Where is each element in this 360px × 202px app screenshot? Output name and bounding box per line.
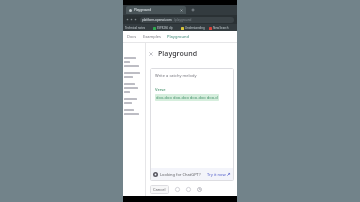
staticText: Technical notes (125, 26, 151, 30)
button[interactable]: Copy (174, 186, 181, 193)
button[interactable]: Playground (126, 6, 186, 14)
button[interactable]: Cancel (150, 185, 169, 194)
button[interactable]: Understanding (181, 26, 207, 30)
staticText: Playground (158, 49, 198, 59)
button[interactable]: ESP8266 diy (153, 26, 179, 30)
staticText: Looking for ChatGPT? (160, 172, 206, 177)
button[interactable]: Try it now (206, 171, 231, 178)
staticText: ESP8266 diy (157, 26, 179, 30)
button[interactable]: Technical notes (125, 26, 151, 30)
staticText: Cancel (153, 187, 166, 192)
button[interactable]: Save (185, 186, 192, 193)
staticText: platform.openai.com (142, 18, 172, 22)
button[interactable]: Navigate (130, 18, 133, 21)
staticText: Examples (143, 34, 161, 39)
button[interactable]: Navigate (126, 18, 129, 21)
button[interactable]: Navigate (134, 18, 137, 21)
button[interactable]: History (196, 186, 203, 193)
button[interactable]: New Search (209, 26, 235, 30)
staticText: doo-doo doo-doo doo-doo doo-d (156, 95, 218, 100)
staticText: Playground (134, 8, 180, 12)
button[interactable]: Playground (164, 32, 192, 41)
button[interactable]: Examples (140, 32, 164, 41)
button[interactable]: New tab (190, 7, 196, 13)
button[interactable]: Docs (124, 32, 140, 41)
staticText: Verse (155, 87, 166, 92)
staticText: Understanding (185, 26, 207, 30)
staticText: /playground (174, 18, 192, 22)
button[interactable]: Close (148, 51, 154, 57)
staticText: Docs (127, 34, 137, 39)
staticText: New Search (213, 26, 235, 30)
staticText: Write a catchy melody (155, 73, 197, 78)
button[interactable]: platform.openai.com (140, 17, 234, 23)
staticText: Try it now (207, 172, 226, 177)
staticText: Playground (167, 34, 189, 39)
